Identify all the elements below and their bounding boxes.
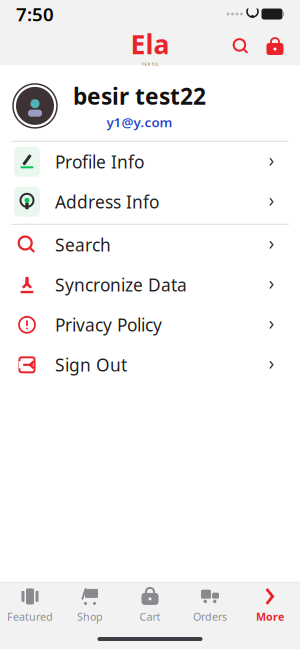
button[interactable]: Syncronize Data (0, 265, 300, 305)
staticText: besir test22 (73, 81, 206, 111)
staticText: Orders (193, 609, 227, 624)
staticText: 7:50 (16, 2, 54, 26)
button[interactable]: Sign Out (0, 345, 300, 385)
button[interactable]: Cart (258, 28, 292, 64)
button[interactable]: Search (224, 28, 258, 64)
button[interactable]: Orders (180, 583, 240, 627)
button[interactable]: Profile Info (0, 142, 300, 182)
staticText: T E X T I L (141, 62, 158, 67)
staticText: Cart (139, 609, 160, 624)
staticText: Privacy Policy (55, 313, 162, 336)
button[interactable]: More (240, 583, 300, 627)
staticText: Ela (130, 26, 169, 61)
staticText: Syncronize Data (55, 273, 187, 296)
button[interactable]: Privacy Policy (0, 305, 300, 345)
staticText: Featured (7, 609, 53, 624)
staticText: Shop (77, 609, 103, 624)
button[interactable]: Featured (0, 583, 60, 627)
button[interactable]: Search (0, 225, 300, 265)
button[interactable]: Cart (120, 583, 180, 627)
button[interactable]: Address Info (0, 182, 300, 222)
button[interactable]: Shop (60, 583, 120, 627)
staticText: y1@y.com (106, 113, 172, 131)
staticText: More (256, 609, 284, 624)
staticText: Profile Info (55, 150, 144, 173)
staticText: Address Info (55, 190, 159, 213)
staticText: Search (55, 233, 111, 256)
staticText: Sign Out (55, 353, 127, 376)
